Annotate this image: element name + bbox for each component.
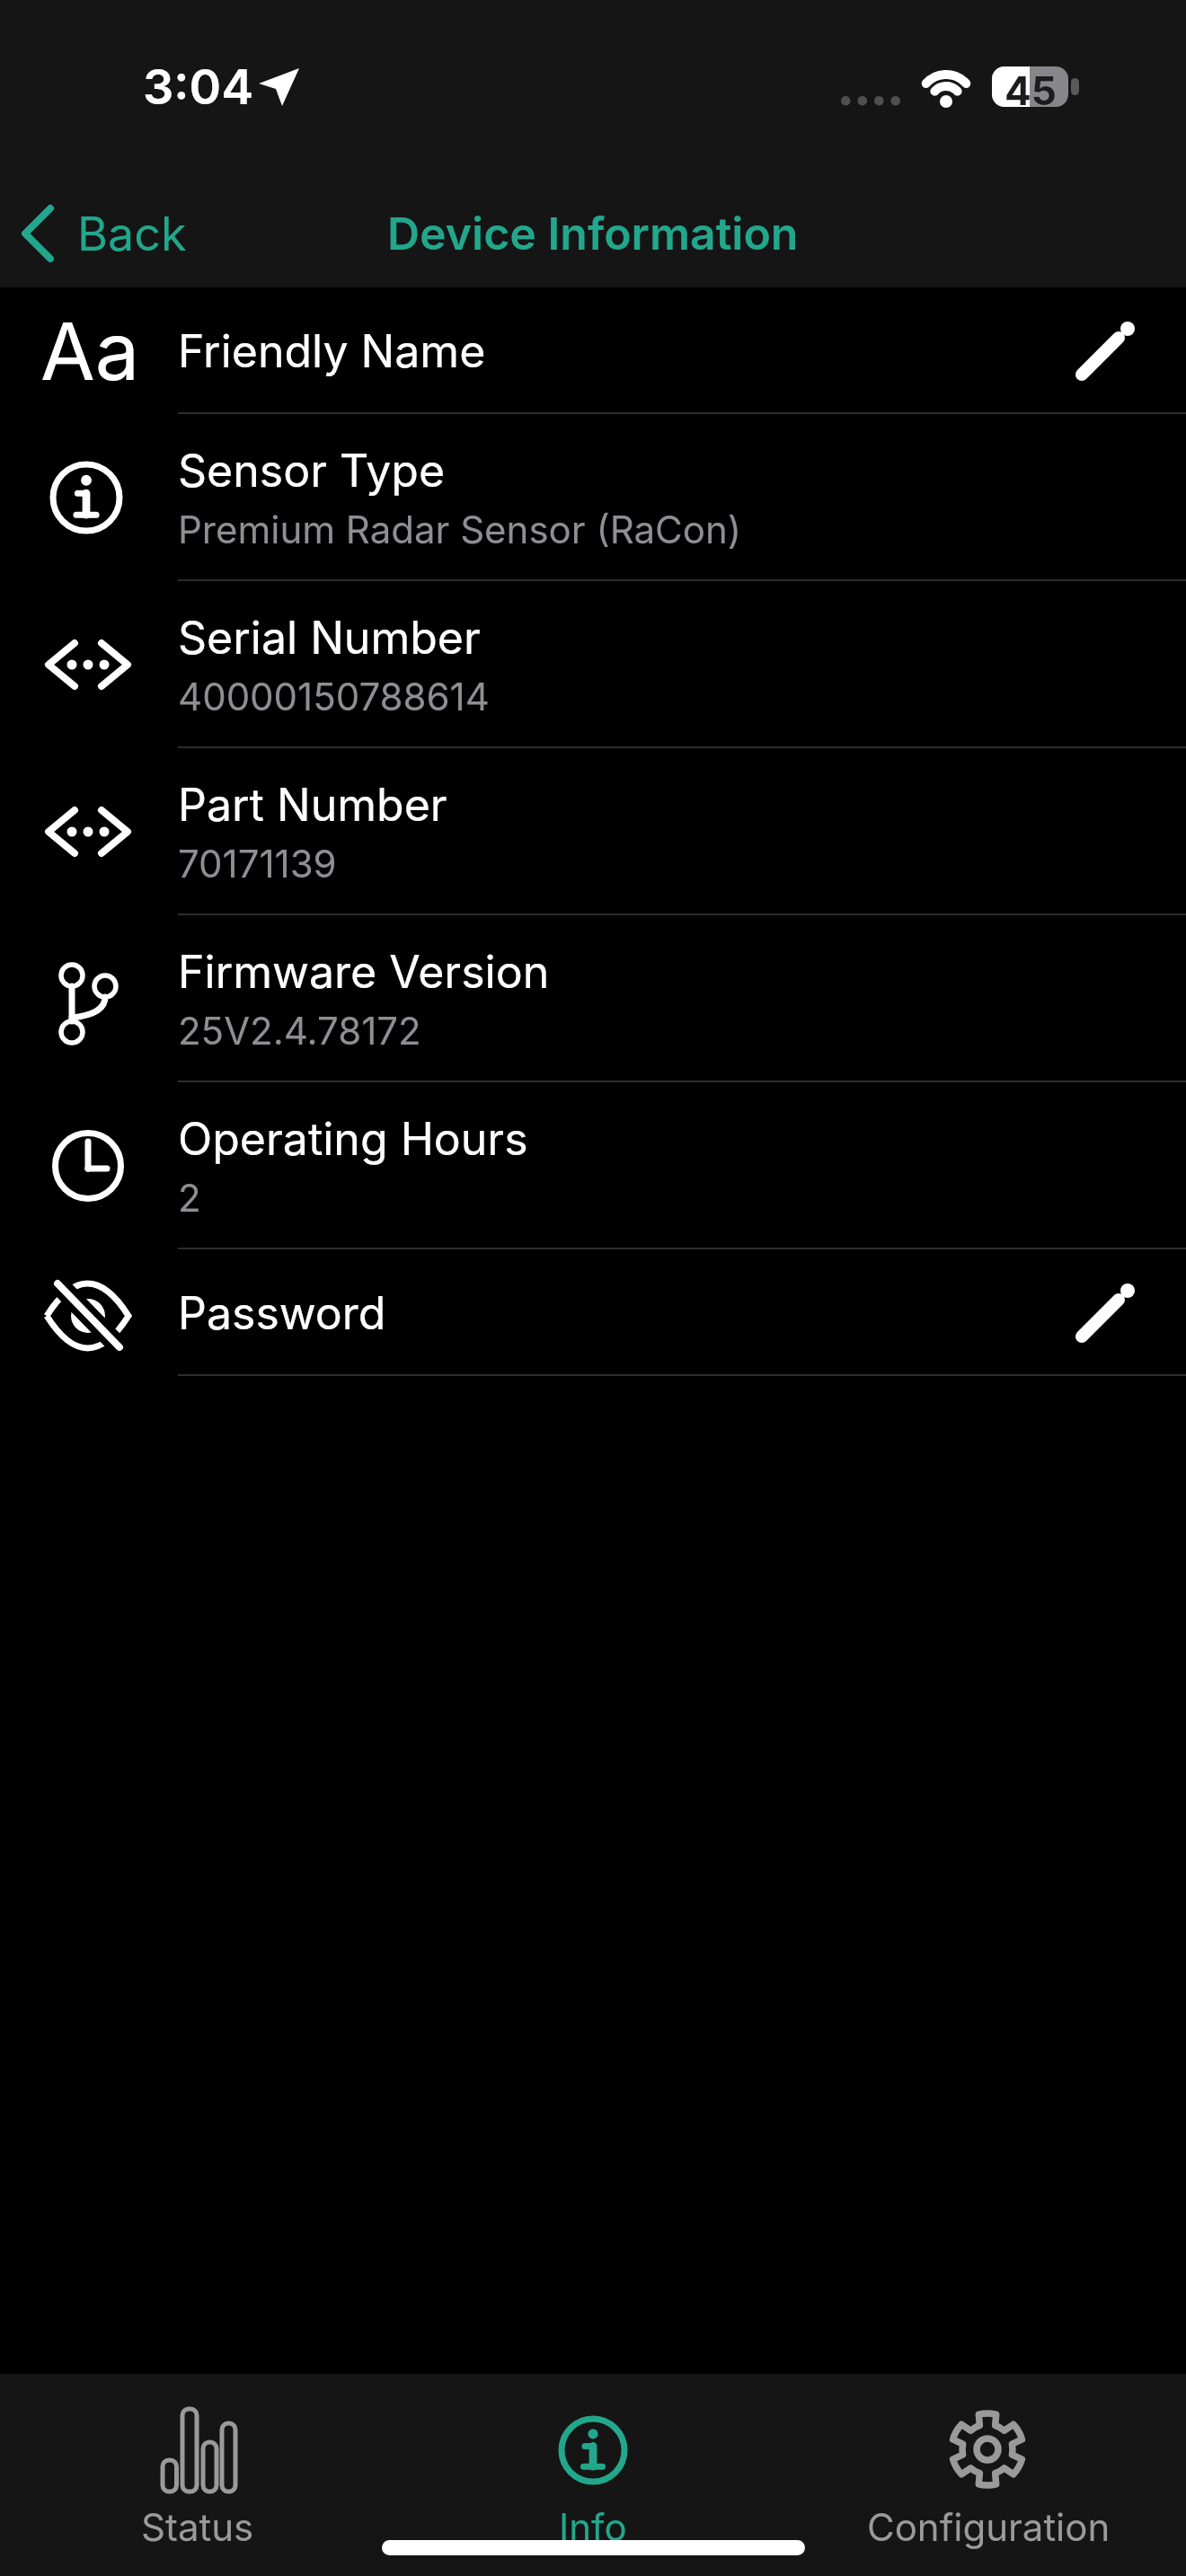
staticText: 2 (178, 1175, 201, 1221)
button[interactable]: Firmware Version (0, 915, 1186, 1082)
staticText: Aa (40, 304, 140, 399)
button[interactable]: Aa (0, 287, 1186, 414)
button[interactable]: Operating Hours (0, 1082, 1186, 1249)
button[interactable]: Password (0, 1249, 1186, 1376)
staticText: Info (559, 2504, 627, 2550)
staticText: Device Information (387, 207, 799, 260)
staticText: Configuration (867, 2504, 1111, 2550)
staticText: Part Number (178, 778, 447, 832)
staticText: 3:04 (143, 57, 254, 116)
staticText: Status (141, 2504, 254, 2550)
staticText: Serial Number (178, 611, 481, 665)
button[interactable]: Info (431, 2385, 755, 2555)
button[interactable]: Serial Number (0, 581, 1186, 748)
staticText: 25V2.4.78172 (178, 1008, 421, 1054)
staticText: Firmware Version (178, 945, 550, 999)
button[interactable]: Back (9, 196, 243, 271)
staticText: 45 (1005, 66, 1057, 107)
button[interactable]: Sensor Type (0, 414, 1186, 581)
staticText: 40000150788614 (178, 674, 490, 719)
button[interactable]: Configuration (809, 2385, 1168, 2555)
staticText: 70171139 (178, 841, 337, 887)
button[interactable]: Part Number (0, 748, 1186, 915)
staticText: Friendly Name (178, 324, 486, 378)
staticText: Back (77, 206, 187, 262)
staticText: Password (178, 1286, 386, 1340)
button[interactable]: Status (54, 2385, 341, 2555)
staticText: Sensor Type (178, 444, 446, 498)
staticText: Premium Radar Sensor (RaCon) (178, 507, 742, 552)
staticText: Operating Hours (178, 1112, 528, 1166)
